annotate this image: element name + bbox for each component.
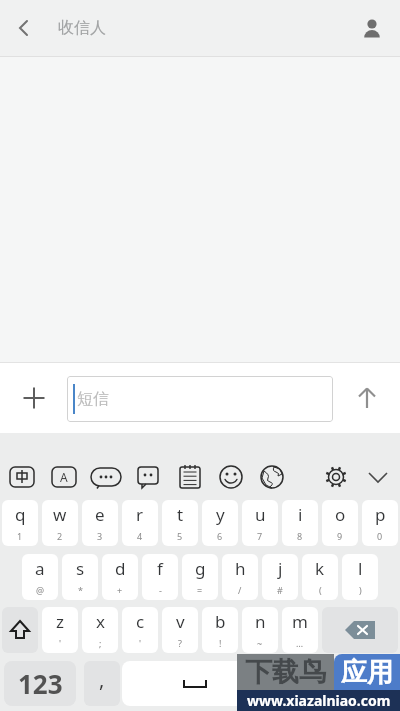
staticText: 3 [97,530,103,542]
button[interactable]: w [42,500,78,546]
button[interactable] [211,457,251,497]
staticText: m [292,610,308,633]
staticText: A [60,469,68,485]
staticText: r [136,503,144,526]
button[interactable] [252,457,292,497]
button[interactable] [343,374,391,422]
button[interactable]: , [84,661,120,706]
staticText: , [99,666,105,693]
button[interactable] [2,607,38,653]
button[interactable]: o [322,500,358,546]
staticText: 9 [337,530,343,542]
staticText: ~ [257,637,263,649]
button[interactable] [122,661,286,706]
button[interactable]: j [262,554,298,600]
staticText: 7 [257,530,263,542]
staticText: h [235,557,246,580]
staticText: ) [359,584,362,596]
button[interactable]: k [302,554,338,600]
staticText: www.xiazalniao.com [247,691,391,710]
staticText: j [278,557,283,580]
button[interactable] [294,661,398,706]
staticText: e [95,503,105,526]
button[interactable]: x [82,607,118,653]
staticText: 0 [377,530,383,542]
button[interactable]: s [62,554,98,600]
staticText: g [195,557,206,580]
button[interactable] [128,457,168,497]
staticText: t [177,503,184,526]
staticText: i [298,503,303,526]
button[interactable]: r [122,500,158,546]
staticText: ' [59,637,62,649]
button[interactable]: i [282,500,318,546]
staticText: + [117,584,123,596]
button[interactable] [0,0,48,56]
staticText: n [255,610,266,633]
button[interactable]: z [42,607,78,653]
staticText: 2 [57,530,63,542]
staticText: w [53,503,67,526]
staticText: 短信 [77,389,109,409]
button[interactable]: u [242,500,278,546]
button[interactable]: p [362,500,398,546]
button[interactable]: 短信 [67,376,333,422]
staticText: f [157,557,163,580]
staticText: k [315,557,325,580]
staticText: … [296,637,304,649]
button[interactable] [358,457,398,497]
button[interactable]: l [342,554,378,600]
staticText: ? [178,637,182,649]
staticText: b [215,610,226,633]
staticText: a [35,557,45,580]
staticText: s [76,557,85,580]
button[interactable] [344,1,400,57]
staticText: 4 [137,530,143,542]
button[interactable]: y [202,500,238,546]
button[interactable] [2,457,42,497]
staticText: c [136,610,145,633]
staticText: x [96,610,105,633]
button[interactable]: m [282,607,318,653]
staticText: ' [139,637,142,649]
button[interactable]: a [22,554,58,600]
staticText: 1 [17,530,23,542]
staticText: z [56,610,64,633]
button[interactable] [322,607,398,653]
staticText: / [238,584,242,596]
staticText: ( [319,584,322,596]
staticText: o [335,503,346,526]
staticText: y [216,503,225,526]
button[interactable] [170,457,210,497]
staticText: 6 [217,530,223,542]
staticText: 收信人 [58,18,106,38]
staticText: # [277,584,283,596]
staticText: ; [99,637,102,649]
button[interactable]: h [222,554,258,600]
button[interactable]: c [122,607,158,653]
staticText: d [115,557,126,580]
button[interactable]: A [44,457,84,497]
button[interactable]: t [162,500,198,546]
staticText: 8 [297,530,303,542]
staticText: = [197,584,203,596]
button[interactable]: g [182,554,218,600]
button[interactable] [316,457,356,497]
button[interactable]: q [2,500,38,546]
staticText: p [375,503,386,526]
button[interactable] [86,457,126,497]
staticText: q [15,503,26,526]
button[interactable]: e [82,500,118,546]
button[interactable]: b [202,607,238,653]
button[interactable] [10,374,58,422]
button[interactable]: d [102,554,138,600]
staticText: l [358,557,363,580]
button[interactable]: v [162,607,198,653]
staticText: 5 [177,530,183,542]
staticText: v [176,610,185,633]
staticText: 下载鸟 [245,655,326,689]
button[interactable]: n [242,607,278,653]
button[interactable]: f [142,554,178,600]
button[interactable]: 123 [4,661,76,706]
staticText: u [255,503,266,526]
